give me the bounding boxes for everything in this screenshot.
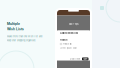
staticText: Lorem ipsum dolor: [60, 47, 77, 49]
staticText: Hearth: [60, 39, 67, 41]
staticText: Wish Lists: [7, 27, 24, 31]
staticText: Table Tops: [68, 23, 78, 26]
staticText: Make more than one wish list and: [7, 35, 42, 38]
staticText: Add to wish list: [60, 32, 78, 35]
staticText: Multiple: [7, 22, 20, 26]
staticText: Create new: [69, 58, 80, 60]
button[interactable]: Save: [82, 57, 88, 60]
staticText: Save: [83, 58, 87, 60]
staticText: Private list: [63, 43, 72, 45]
staticText: keep your shopping organised.: [7, 39, 36, 42]
